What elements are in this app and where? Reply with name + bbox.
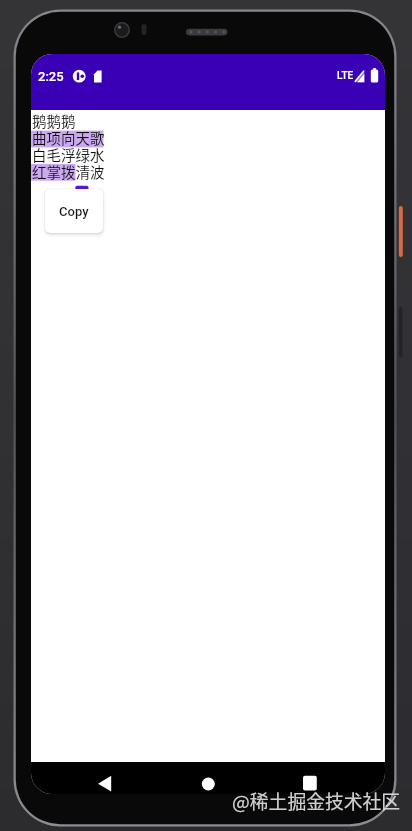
staticText: 曲项向天歌 xyxy=(32,127,105,148)
button[interactable] xyxy=(86,764,126,794)
staticText: 白毛浮绿水 xyxy=(32,144,105,165)
button[interactable]: Copy xyxy=(45,189,103,233)
staticText: 鹅鹅鹅 xyxy=(32,110,76,131)
button[interactable] xyxy=(289,764,329,794)
staticText: 红掌拨清波 xyxy=(32,161,105,182)
staticText: Copy xyxy=(59,204,89,219)
staticText: LTE xyxy=(337,70,354,82)
staticText: 2:25 xyxy=(38,69,64,84)
staticText: @稀土掘金技术社区 xyxy=(232,787,401,814)
button[interactable] xyxy=(188,764,228,794)
